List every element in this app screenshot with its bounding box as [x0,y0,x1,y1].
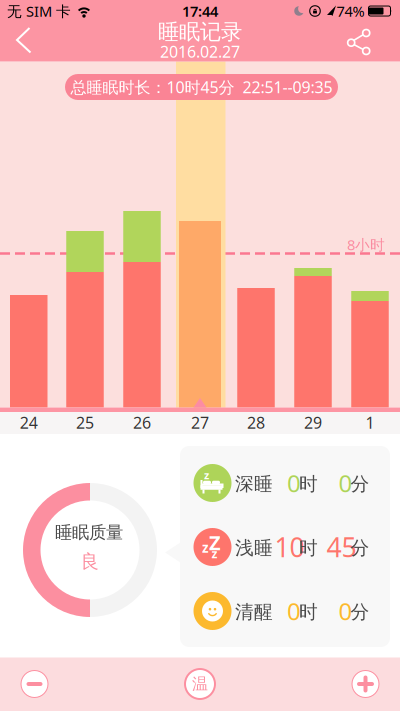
button[interactable]: Share [342,25,376,57]
staticText: 45 [326,529,356,565]
staticText: 0 [338,595,352,627]
staticText: 0 [287,595,301,627]
staticText: z [204,468,209,482]
button[interactable]: Back [17,24,37,56]
staticText: 分 [350,472,369,495]
button[interactable]: Next day [351,669,380,698]
staticText: 10 [274,529,304,565]
staticText: 时 [299,472,318,495]
staticText: 无 SIM 卡 [7,1,71,21]
staticText: 74% [336,1,364,21]
staticText: 分 [350,536,369,559]
staticText: 睡眠记录 [158,19,242,45]
staticText: Z [209,529,221,556]
staticText: 浅睡 [235,536,273,559]
staticText: 2016.02.27 [160,41,240,62]
staticText: 8小时 [347,235,385,254]
staticText: z [202,539,209,556]
staticText: 时 [299,536,318,559]
staticText: 29 [304,412,322,433]
staticText: z [211,545,217,561]
staticText: 25 [76,412,94,433]
staticText: 1 [365,412,374,433]
staticText: 28 [247,412,265,433]
staticText: 0 [287,467,301,499]
staticText: 温 [192,674,208,694]
staticText: 睡眠质量 [55,522,123,543]
staticText: 分 [350,600,369,623]
staticText: 深睡 [235,472,273,495]
button[interactable]: Previous day [20,669,49,698]
staticText: 清醒 [235,600,273,623]
staticText: 24 [20,412,38,433]
staticText: 0 [338,467,352,499]
staticText: 26 [133,412,151,433]
staticText: 27 [191,412,209,433]
staticText: 良 [80,550,99,573]
button[interactable]: Temperature [183,667,216,700]
staticText: 总睡眠时长：10时45分 22:51--09:35 [70,76,332,98]
staticText: 17:44 [182,1,218,21]
staticText: 时 [299,600,318,623]
